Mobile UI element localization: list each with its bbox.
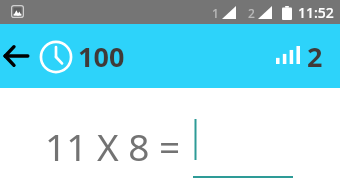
staticText: 100	[78, 38, 125, 75]
staticText: 11 X 8 =	[45, 121, 181, 171]
button[interactable]: Answer	[193, 116, 293, 178]
staticText: 11:52	[298, 3, 334, 22]
staticText: 2	[307, 38, 323, 75]
staticText: 1	[212, 5, 219, 21]
staticText: 2	[248, 5, 255, 21]
button[interactable]: Back	[1, 41, 31, 71]
